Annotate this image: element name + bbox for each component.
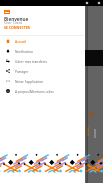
button[interactable]: Notification xyxy=(0,46,85,56)
staticText: Notification xyxy=(15,49,34,53)
staticText: Gérer mes transferts xyxy=(15,59,48,63)
staticText: Cher Client xyxy=(4,20,23,25)
staticText: A propos/Mentions utiles xyxy=(15,89,54,93)
staticText: Partager xyxy=(15,69,29,73)
staticText: Noter l'application xyxy=(15,79,44,83)
button[interactable]: Accueil xyxy=(0,36,85,46)
button[interactable]: SE CONNECTER xyxy=(4,25,30,30)
staticText: SE CONNECTER xyxy=(4,25,30,30)
button[interactable]: Gérer mes transferts xyxy=(0,56,85,66)
staticText: Bienvenue xyxy=(4,16,29,22)
button[interactable]: Noter l'application xyxy=(0,76,85,86)
staticText: Accueil xyxy=(15,39,27,43)
button[interactable]: A propos/Mentions utiles xyxy=(0,86,85,96)
button[interactable]: Partager xyxy=(0,66,85,76)
